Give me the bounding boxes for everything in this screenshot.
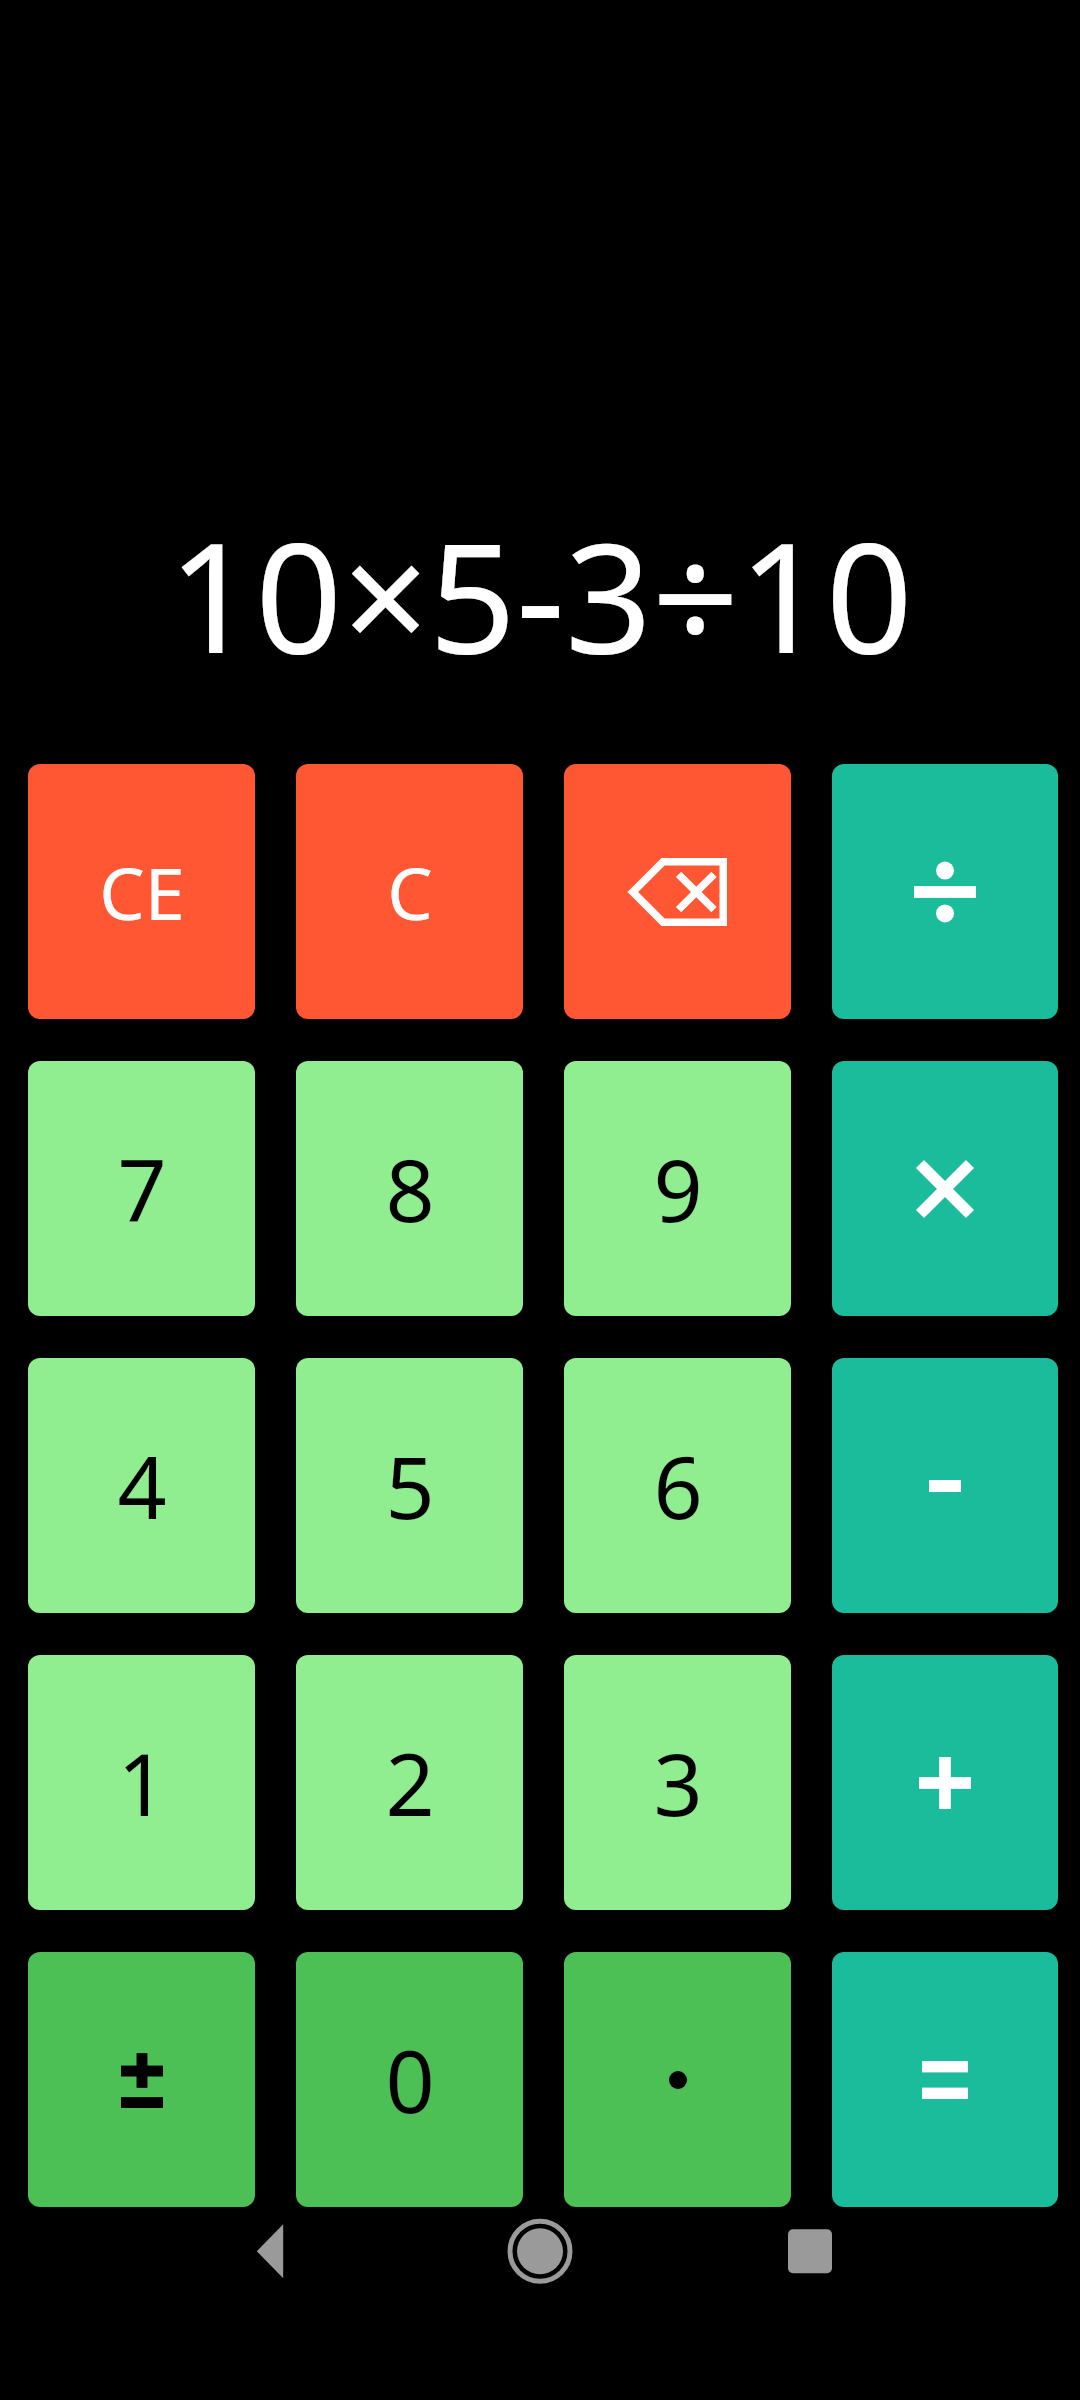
button[interactable]: Multiply	[832, 1061, 1058, 1316]
button[interactable]: 6	[564, 1358, 791, 1613]
button[interactable]: Home	[360, 2208, 720, 2400]
button[interactable]: Divide	[832, 764, 1058, 1019]
button[interactable]: 7	[28, 1061, 255, 1316]
button[interactable]: Decimal point	[564, 1952, 791, 2207]
button[interactable]: C	[296, 764, 523, 1019]
staticText: 1	[117, 1724, 167, 1841]
button[interactable]: Minus	[832, 1358, 1058, 1613]
staticText: 3	[653, 1724, 703, 1841]
button[interactable]: Backspace	[564, 764, 791, 1019]
staticText: C	[387, 843, 433, 941]
staticText: 6	[653, 1427, 703, 1544]
button[interactable]: Plus	[832, 1655, 1058, 1910]
button[interactable]: 5	[296, 1358, 523, 1613]
staticText: 2	[385, 1724, 435, 1841]
staticText: 9	[653, 1130, 703, 1247]
staticText: 5	[385, 1427, 435, 1544]
button[interactable]: Equals	[832, 1952, 1058, 2207]
button[interactable]: 1	[28, 1655, 255, 1910]
staticText: 7	[117, 1130, 167, 1247]
button[interactable]: Recent apps	[720, 2208, 1080, 2400]
staticText: 8	[385, 1130, 435, 1247]
button[interactable]: Plus minus	[28, 1952, 255, 2207]
staticText: CE	[99, 843, 185, 941]
button[interactable]: CE	[28, 764, 255, 1019]
staticText: 0	[385, 2021, 435, 2138]
button[interactable]: 9	[564, 1061, 791, 1316]
staticText: 4	[117, 1427, 167, 1544]
button[interactable]: 0	[296, 1952, 523, 2207]
button[interactable]: 2	[296, 1655, 523, 1910]
button[interactable]: 3	[564, 1655, 791, 1910]
button[interactable]: 4	[28, 1358, 255, 1613]
staticText: 10×5-3÷10	[168, 491, 913, 698]
button[interactable]: Back	[0, 2208, 360, 2400]
button[interactable]: 8	[296, 1061, 523, 1316]
